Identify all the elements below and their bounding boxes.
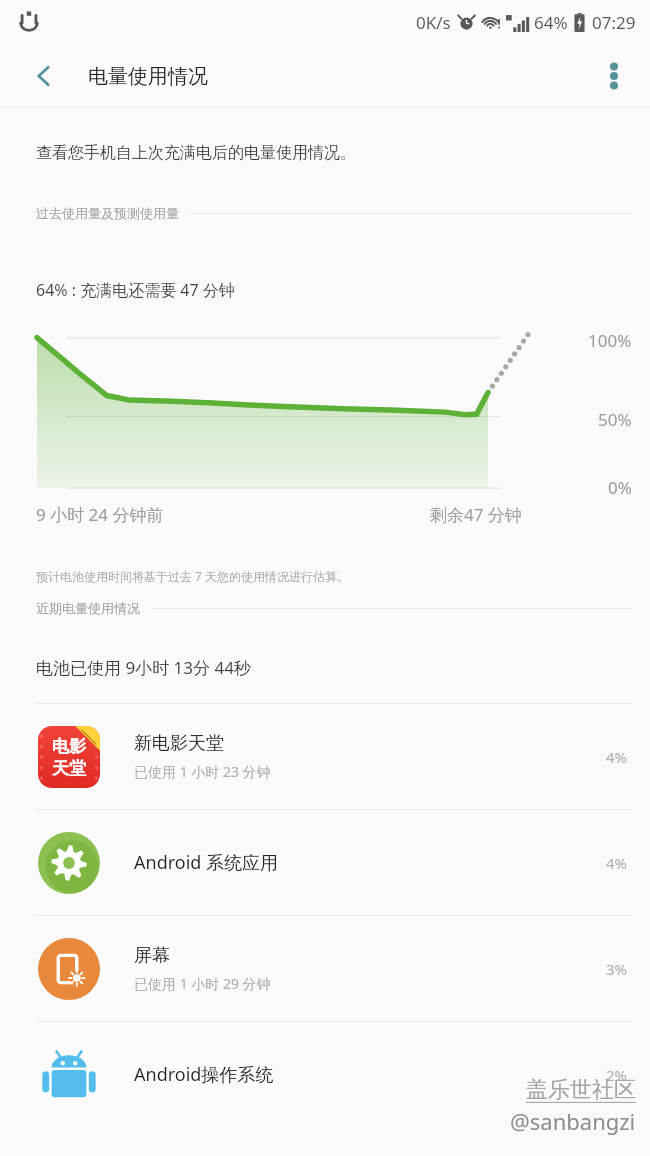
button[interactable]: 更多选项 <box>588 50 640 102</box>
staticText: 过去使用量及预测使用量 <box>36 205 179 221</box>
staticText: 屏幕 <box>134 944 170 967</box>
staticText: 2% <box>606 1065 628 1085</box>
staticText: 4% <box>606 853 628 873</box>
staticText: @sanbangzi <box>510 1106 636 1136</box>
button[interactable]: Android操作系统 <box>0 1022 650 1127</box>
staticText: 07:29 <box>592 11 636 34</box>
staticText: 新电影天堂 <box>134 732 224 755</box>
staticText: 64% : 充满电还需要 47 分钟 <box>36 279 235 301</box>
staticText: 电影 <box>52 736 86 757</box>
staticText: 50% <box>598 408 632 431</box>
staticText: 0K/s <box>416 11 451 34</box>
staticText: 预计电池使用时间将基于过去 7 天您的使用情况进行估算。 <box>36 568 350 584</box>
staticText: 0% <box>608 476 632 499</box>
staticText: 9 小时 24 分钟前 <box>36 503 164 526</box>
button[interactable]: 电影 <box>0 704 650 809</box>
staticText: 电量使用情况 <box>88 64 208 89</box>
staticText: 4% <box>606 747 628 767</box>
staticText: 天堂 <box>52 758 86 779</box>
staticText: 100% <box>588 329 632 352</box>
staticText: 已使用 1 小时 23 分钟 <box>134 762 271 781</box>
staticText: Android操作系统 <box>134 1062 274 1087</box>
staticText: 剩余47 分钟 <box>430 503 522 526</box>
staticText: 64% <box>534 11 568 34</box>
staticText: 已使用 1 小时 29 分钟 <box>134 974 271 993</box>
button[interactable]: 返回 <box>16 48 72 104</box>
staticText: 3% <box>606 959 628 979</box>
staticText: 查看您手机自上次充满电后的电量使用情况。 <box>36 143 356 163</box>
staticText: 盖乐世社区 <box>526 1076 636 1104</box>
button[interactable]: Android 系统应用 <box>0 810 650 915</box>
staticText: 电池已使用 9小时 13分 44秒 <box>36 656 251 679</box>
staticText: Android 系统应用 <box>134 850 279 875</box>
button[interactable]: 屏幕 <box>0 916 650 1021</box>
staticText: 近期电量使用情况 <box>36 600 140 616</box>
